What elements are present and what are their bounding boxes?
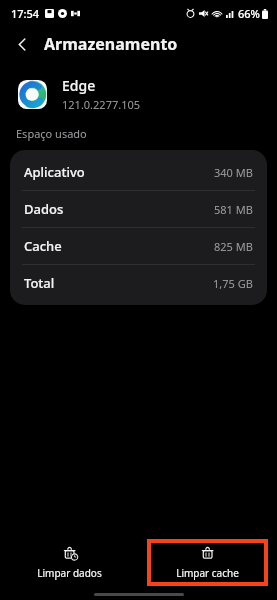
staticText: 825 MB [214, 239, 253, 254]
staticText: Cache [24, 237, 62, 255]
button[interactable]: Aplicativo [10, 154, 267, 190]
button[interactable]: Dados [10, 191, 267, 227]
staticText: Armazenamento [44, 33, 178, 55]
staticText: 17:54 [11, 6, 40, 21]
staticText: Limpar dados [37, 566, 102, 580]
staticText: Total [24, 274, 55, 292]
button[interactable]: Total [10, 265, 267, 301]
staticText: Dados [24, 200, 64, 218]
button[interactable]: Limpar dados [0, 536, 138, 588]
staticText: 581 MB [214, 202, 253, 217]
staticText: 66% [238, 6, 260, 21]
staticText: Limpar cache [176, 566, 239, 580]
staticText: 1,75 GB [213, 276, 253, 291]
button[interactable]: Limpar cache [151, 543, 264, 582]
staticText: 340 MB [214, 165, 253, 180]
staticText: 121.0.2277.105 [62, 97, 141, 112]
button[interactable]: Voltar [6, 28, 38, 60]
staticText: Edge [62, 76, 96, 95]
staticText: Espaço usado [16, 126, 87, 141]
button[interactable]: Cache [10, 228, 267, 264]
staticText: Aplicativo [24, 163, 85, 181]
